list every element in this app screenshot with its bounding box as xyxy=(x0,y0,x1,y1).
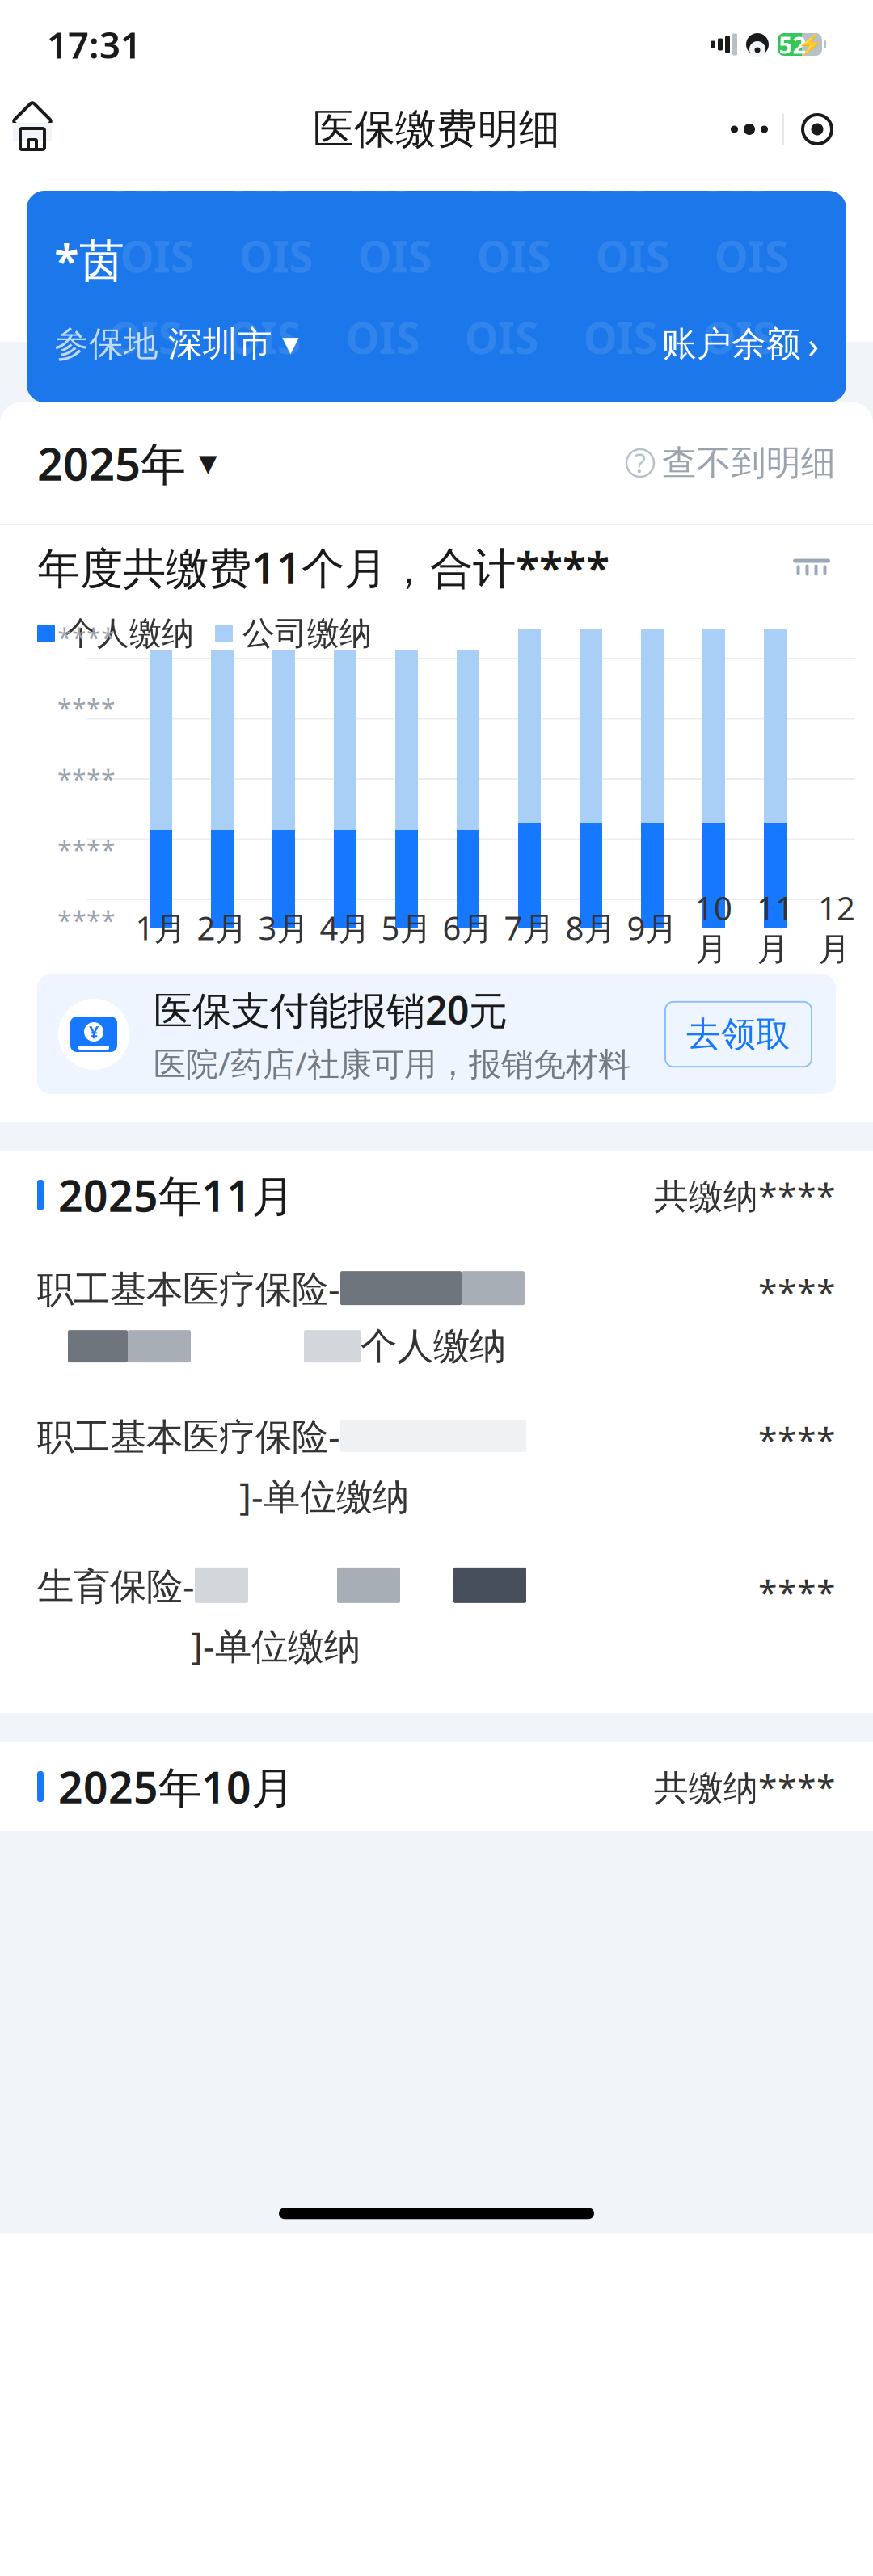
staticText: 3月 xyxy=(258,906,309,949)
staticText: ОIS xyxy=(697,146,770,203)
staticText: ]-单位缴纳 xyxy=(191,1621,361,1670)
staticText: 17:31 xyxy=(47,20,141,69)
staticText: 医保缴费明细 xyxy=(313,104,560,154)
staticText: **** xyxy=(758,1269,836,1315)
staticText: ОIS xyxy=(702,309,776,366)
staticText: 深圳市 xyxy=(168,323,272,365)
staticText: *茵 xyxy=(54,229,124,290)
staticText: 11月 xyxy=(757,886,794,969)
staticText: 个人缴纳 xyxy=(65,614,194,653)
staticText: ОIS xyxy=(483,390,556,447)
staticText: ОIS xyxy=(221,146,295,203)
staticText: **** xyxy=(57,762,116,796)
staticText: 查不到明细 xyxy=(662,442,836,484)
staticText: **** xyxy=(57,691,116,725)
staticText: 6月 xyxy=(443,906,493,949)
staticText: **** xyxy=(758,1416,836,1462)
staticText: **** xyxy=(57,833,116,867)
staticText: ОIS xyxy=(108,309,182,366)
staticText: ОIS xyxy=(227,309,301,366)
staticText: ОIS xyxy=(715,227,788,284)
staticText: ОIS xyxy=(340,146,414,203)
staticText: 职工基本医疗保险- xyxy=(37,1264,340,1312)
staticText: ОIS xyxy=(601,390,675,447)
staticText: 1月 xyxy=(135,906,186,949)
staticText: ОIS xyxy=(459,146,533,203)
staticText: 年度共缴费11个月，合计**** xyxy=(37,539,609,596)
staticText: 8月 xyxy=(565,906,616,949)
staticText: ▼ xyxy=(199,450,217,476)
staticText: ¥ xyxy=(89,1020,99,1043)
staticText: **** xyxy=(57,620,116,655)
staticText: 公司缴纳 xyxy=(242,614,372,653)
staticText: 职工基本医疗保险- xyxy=(37,1411,340,1460)
staticText: ОIS xyxy=(358,227,432,284)
staticText: 个人缴纳 xyxy=(361,1324,506,1369)
staticText: ОIS xyxy=(120,227,194,284)
button[interactable]: 2025年 xyxy=(37,423,217,503)
staticText: ▼ xyxy=(282,332,299,356)
button[interactable]: 参保地 xyxy=(54,317,299,372)
staticText: 参保地 xyxy=(54,323,158,365)
button[interactable]: Home xyxy=(0,99,65,160)
staticText: 生育保险- xyxy=(37,1561,195,1610)
staticText: **** xyxy=(57,903,116,938)
staticText: 52 xyxy=(779,29,806,60)
staticText: ? xyxy=(635,446,646,480)
staticText: ⚡ xyxy=(797,32,824,57)
staticText: ОIS xyxy=(465,309,538,366)
button[interactable]: ? xyxy=(626,432,836,494)
staticText: ОIS xyxy=(578,146,652,203)
staticText: 医院/药店/社康可用，报销免材料 xyxy=(154,1042,630,1085)
staticText: ]-单位缴纳 xyxy=(239,1471,409,1520)
staticText: ОIS xyxy=(364,390,437,447)
staticText: ОIS xyxy=(245,390,318,447)
button[interactable]: 账户余额 xyxy=(662,313,819,375)
staticText: 2025年10月 xyxy=(58,1758,294,1815)
staticText: 账户余额 xyxy=(662,323,801,365)
staticText: › xyxy=(808,320,819,368)
staticText: ОIS xyxy=(477,227,550,284)
staticText: ОIS xyxy=(720,390,794,447)
button[interactable]: ¥ xyxy=(37,974,836,1094)
staticText: 2025年11月 xyxy=(58,1166,294,1224)
staticText: 7月 xyxy=(504,906,555,949)
staticText: ОIS xyxy=(126,390,200,447)
button[interactable]: Hide amounts xyxy=(787,551,836,583)
staticText: 2月 xyxy=(197,906,248,949)
staticText: ОIS xyxy=(596,227,669,284)
staticText: ОIS xyxy=(239,227,313,284)
staticText: 医保支付能报销20元 xyxy=(154,984,508,1035)
staticText: ОIS xyxy=(346,309,420,366)
staticText: 共缴纳**** xyxy=(654,1172,836,1218)
staticText: ОIS xyxy=(584,309,657,366)
staticText: 去领取 xyxy=(686,1013,791,1055)
staticText: 2025年 xyxy=(37,433,186,493)
button[interactable]: More and Close xyxy=(711,99,855,159)
staticText: 12月 xyxy=(818,886,855,969)
staticText: 10月 xyxy=(695,886,732,969)
staticText: 9月 xyxy=(627,906,678,949)
staticText: ОIS xyxy=(103,146,176,203)
staticText: 5月 xyxy=(381,906,432,949)
staticText: 共缴纳**** xyxy=(654,1764,836,1810)
staticText: **** xyxy=(758,1569,836,1615)
staticText: 4月 xyxy=(320,906,371,949)
